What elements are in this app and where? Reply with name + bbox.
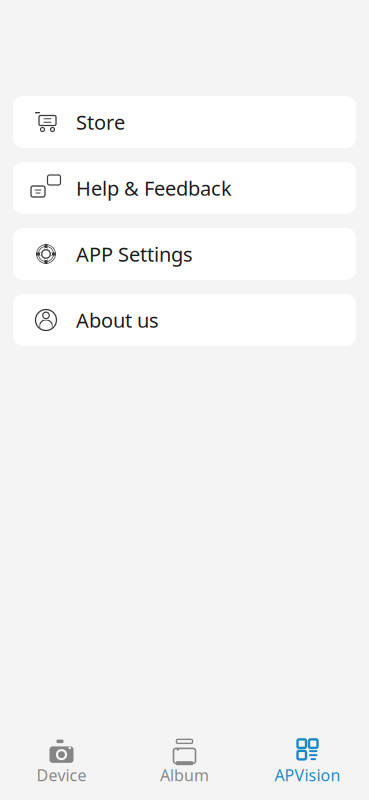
staticText: Album	[160, 764, 209, 786]
button[interactable]: APP Settings	[13, 228, 356, 280]
staticText: APP Settings	[76, 241, 193, 267]
button[interactable]: Store	[13, 96, 356, 148]
staticText: Help & Feedback	[76, 175, 232, 201]
staticText: Device	[36, 764, 86, 786]
button[interactable]: About us	[13, 294, 356, 346]
staticText: Store	[76, 109, 125, 135]
button[interactable]: Device	[0, 738, 123, 786]
staticText: APVision	[274, 764, 340, 786]
staticText: About us	[76, 307, 159, 333]
button[interactable]: Help & Feedback	[13, 162, 356, 214]
button[interactable]: Album	[123, 738, 246, 786]
button[interactable]: APVision	[246, 738, 369, 786]
